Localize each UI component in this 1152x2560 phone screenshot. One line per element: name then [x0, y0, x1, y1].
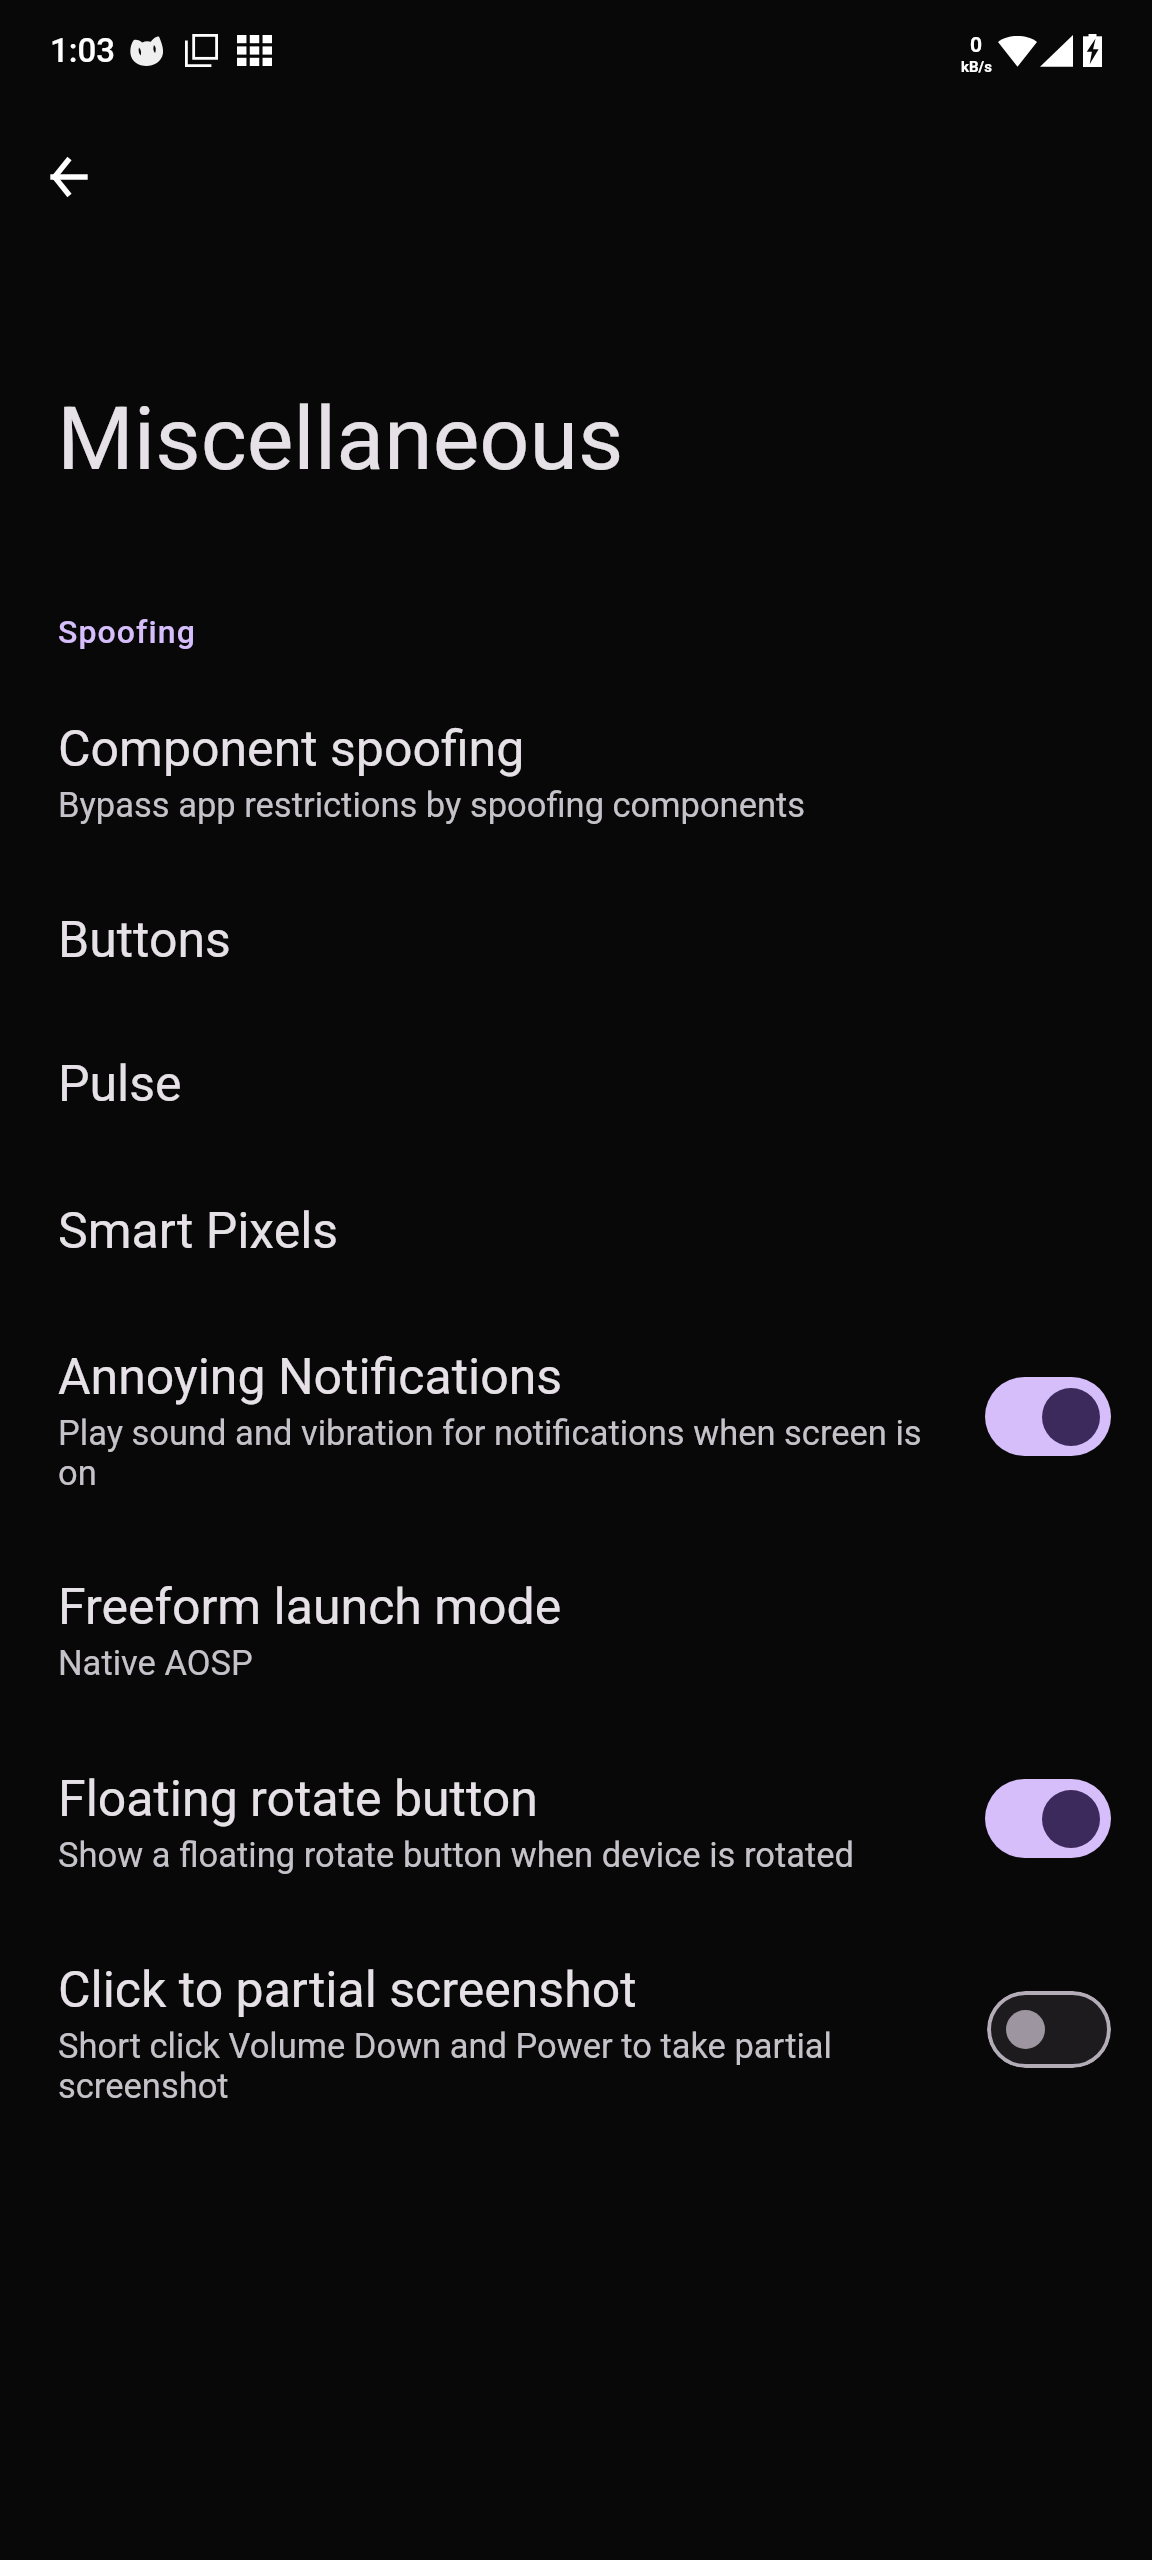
staticText: Freeform launch mode — [58, 1578, 562, 1637]
button[interactable]: Click to partial screenshot — [0, 1961, 1152, 2106]
button[interactable]: Component spoofing — [0, 720, 1152, 825]
button[interactable]: Floating rotate button — [0, 1770, 1152, 1875]
staticText: Component spoofing — [58, 720, 525, 779]
staticText: Bypass app restrictions by spoofing comp… — [58, 785, 806, 825]
staticText: Native AOSP — [58, 1643, 253, 1683]
button[interactable]: Toggle setting — [987, 1991, 1111, 2068]
staticText: Spoofing — [58, 613, 196, 651]
button[interactable]: Freeform launch mode — [0, 1578, 1152, 1683]
staticText: Play sound and vibration for notificatio… — [58, 1413, 928, 1493]
staticText: 0 — [970, 33, 983, 58]
staticText: 1:03 — [50, 31, 115, 70]
button[interactable]: Buttons — [0, 911, 1152, 970]
staticText: Show a floating rotate button when devic… — [58, 1835, 855, 1875]
staticText: Short click Volume Down and Power to tak… — [58, 2026, 868, 2106]
staticText: Smart Pixels — [58, 1202, 339, 1261]
staticText: Buttons — [58, 911, 231, 970]
staticText: Miscellaneous — [57, 387, 624, 490]
button[interactable]: Pulse — [0, 1055, 1152, 1114]
staticText: Pulse — [58, 1055, 182, 1114]
staticText: Floating rotate button — [58, 1770, 538, 1829]
button[interactable]: Navigate up — [18, 126, 119, 227]
staticText: Annoying Notifications — [58, 1348, 563, 1407]
staticText: kB/s — [961, 58, 992, 76]
button[interactable]: Annoying Notifications — [0, 1348, 1152, 1493]
button[interactable]: Toggle setting — [985, 1779, 1111, 1858]
button[interactable]: Smart Pixels — [0, 1202, 1152, 1261]
button[interactable]: Toggle setting — [985, 1377, 1111, 1456]
staticText: Click to partial screenshot — [58, 1961, 637, 2020]
